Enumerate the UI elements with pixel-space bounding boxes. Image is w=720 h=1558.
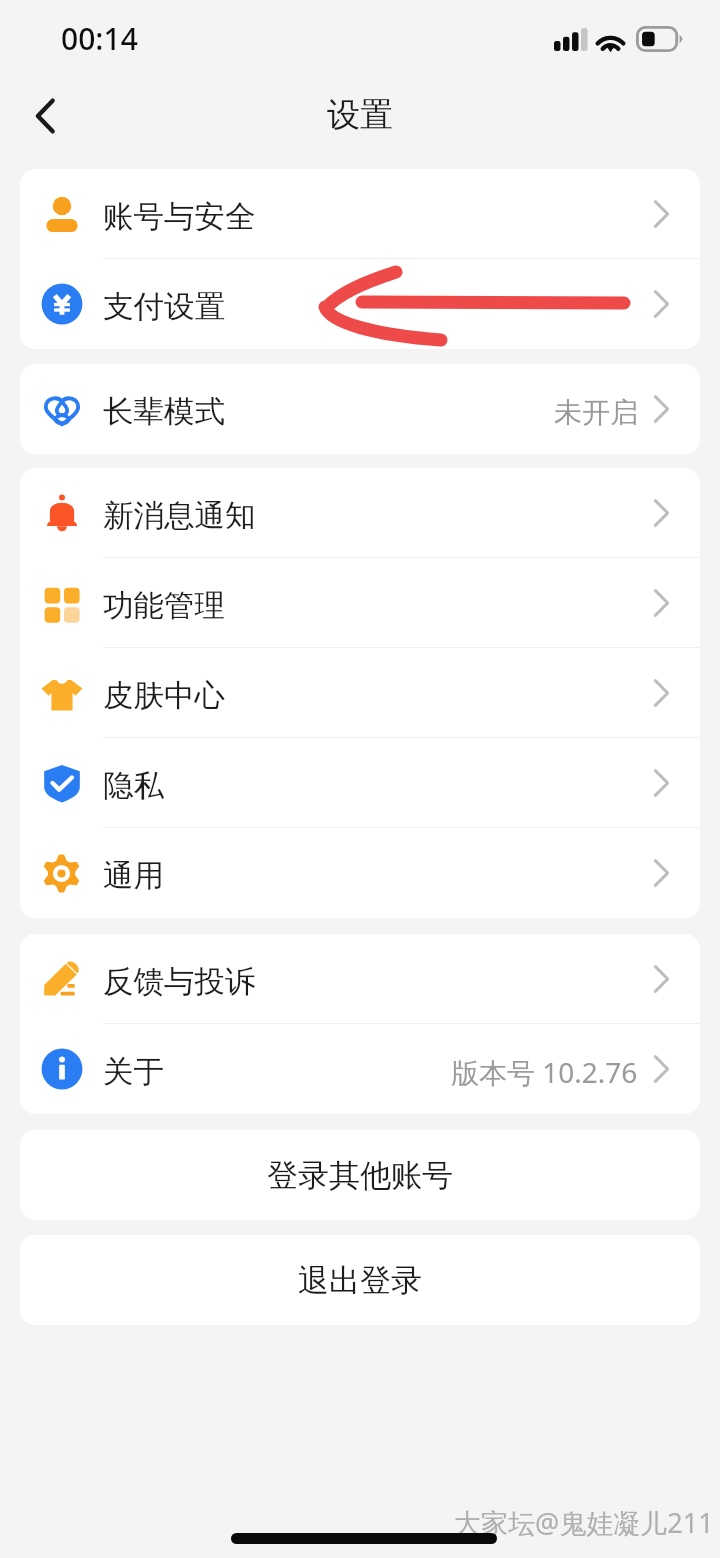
button[interactable]: 通用 bbox=[20, 828, 700, 918]
button[interactable]: 隐私 bbox=[20, 738, 700, 828]
button[interactable]: 支付设置 bbox=[20, 259, 700, 349]
staticText: 通用 bbox=[103, 857, 164, 895]
button[interactable]: 关于 bbox=[20, 1024, 700, 1114]
button[interactable]: 退出登录 bbox=[20, 1235, 700, 1325]
staticText: 大家坛@鬼娃凝儿211 bbox=[454, 1504, 714, 1541]
staticText: 皮肤中心 bbox=[103, 677, 225, 715]
button[interactable]: 登录其他账号 bbox=[20, 1130, 700, 1220]
button[interactable]: 反馈与投诉 bbox=[20, 934, 700, 1024]
button[interactable]: 功能管理 bbox=[20, 558, 700, 648]
button[interactable]: 长辈模式 bbox=[20, 364, 700, 454]
staticText: 退出登录 bbox=[298, 1261, 422, 1300]
staticText: 功能管理 bbox=[103, 587, 225, 625]
staticText: 长辈模式 bbox=[103, 393, 225, 431]
staticText: 登录其他账号 bbox=[267, 1156, 453, 1195]
staticText: 版本号 10.2.76 bbox=[451, 1053, 638, 1091]
button[interactable]: 新消息通知 bbox=[20, 468, 700, 558]
staticText: 新消息通知 bbox=[103, 497, 256, 535]
staticText: 支付设置 bbox=[103, 288, 225, 326]
button[interactable]: 账号与安全 bbox=[20, 169, 700, 259]
staticText: 设置 bbox=[327, 94, 393, 136]
button[interactable]: Back bbox=[10, 82, 84, 152]
staticText: 关于 bbox=[103, 1053, 164, 1091]
staticText: 反馈与投诉 bbox=[103, 963, 256, 1001]
button[interactable]: 皮肤中心 bbox=[20, 648, 700, 738]
staticText: 账号与安全 bbox=[103, 198, 256, 236]
staticText: 00:14 bbox=[61, 18, 138, 59]
staticText: 隐私 bbox=[103, 767, 164, 805]
staticText: 未开启 bbox=[554, 395, 638, 430]
